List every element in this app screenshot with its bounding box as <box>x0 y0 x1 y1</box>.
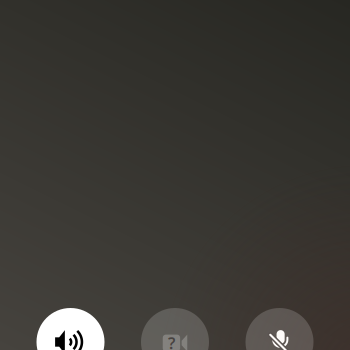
button[interactable]: Speaker <box>36 308 104 350</box>
button[interactable]: Turn camera off <box>141 308 209 350</box>
button[interactable]: Unmute <box>245 308 313 350</box>
staticText: ? <box>168 332 175 350</box>
